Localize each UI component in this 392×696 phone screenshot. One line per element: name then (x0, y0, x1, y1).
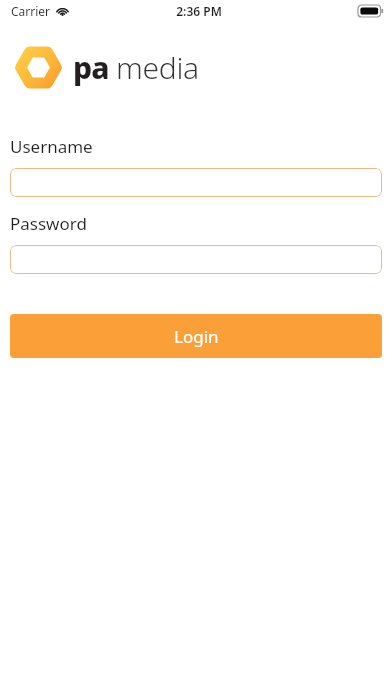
staticText: Username (10, 135, 93, 158)
staticText: Password (10, 212, 87, 235)
staticText: Login (174, 325, 219, 348)
button[interactable]: Password input (10, 245, 382, 274)
staticText: 2:36 PM (176, 3, 222, 19)
staticText: media (116, 47, 199, 88)
staticText: pa (73, 47, 109, 88)
staticText: Carrier (11, 3, 51, 19)
button[interactable]: Username input (10, 168, 382, 197)
button[interactable]: Login (10, 314, 382, 358)
